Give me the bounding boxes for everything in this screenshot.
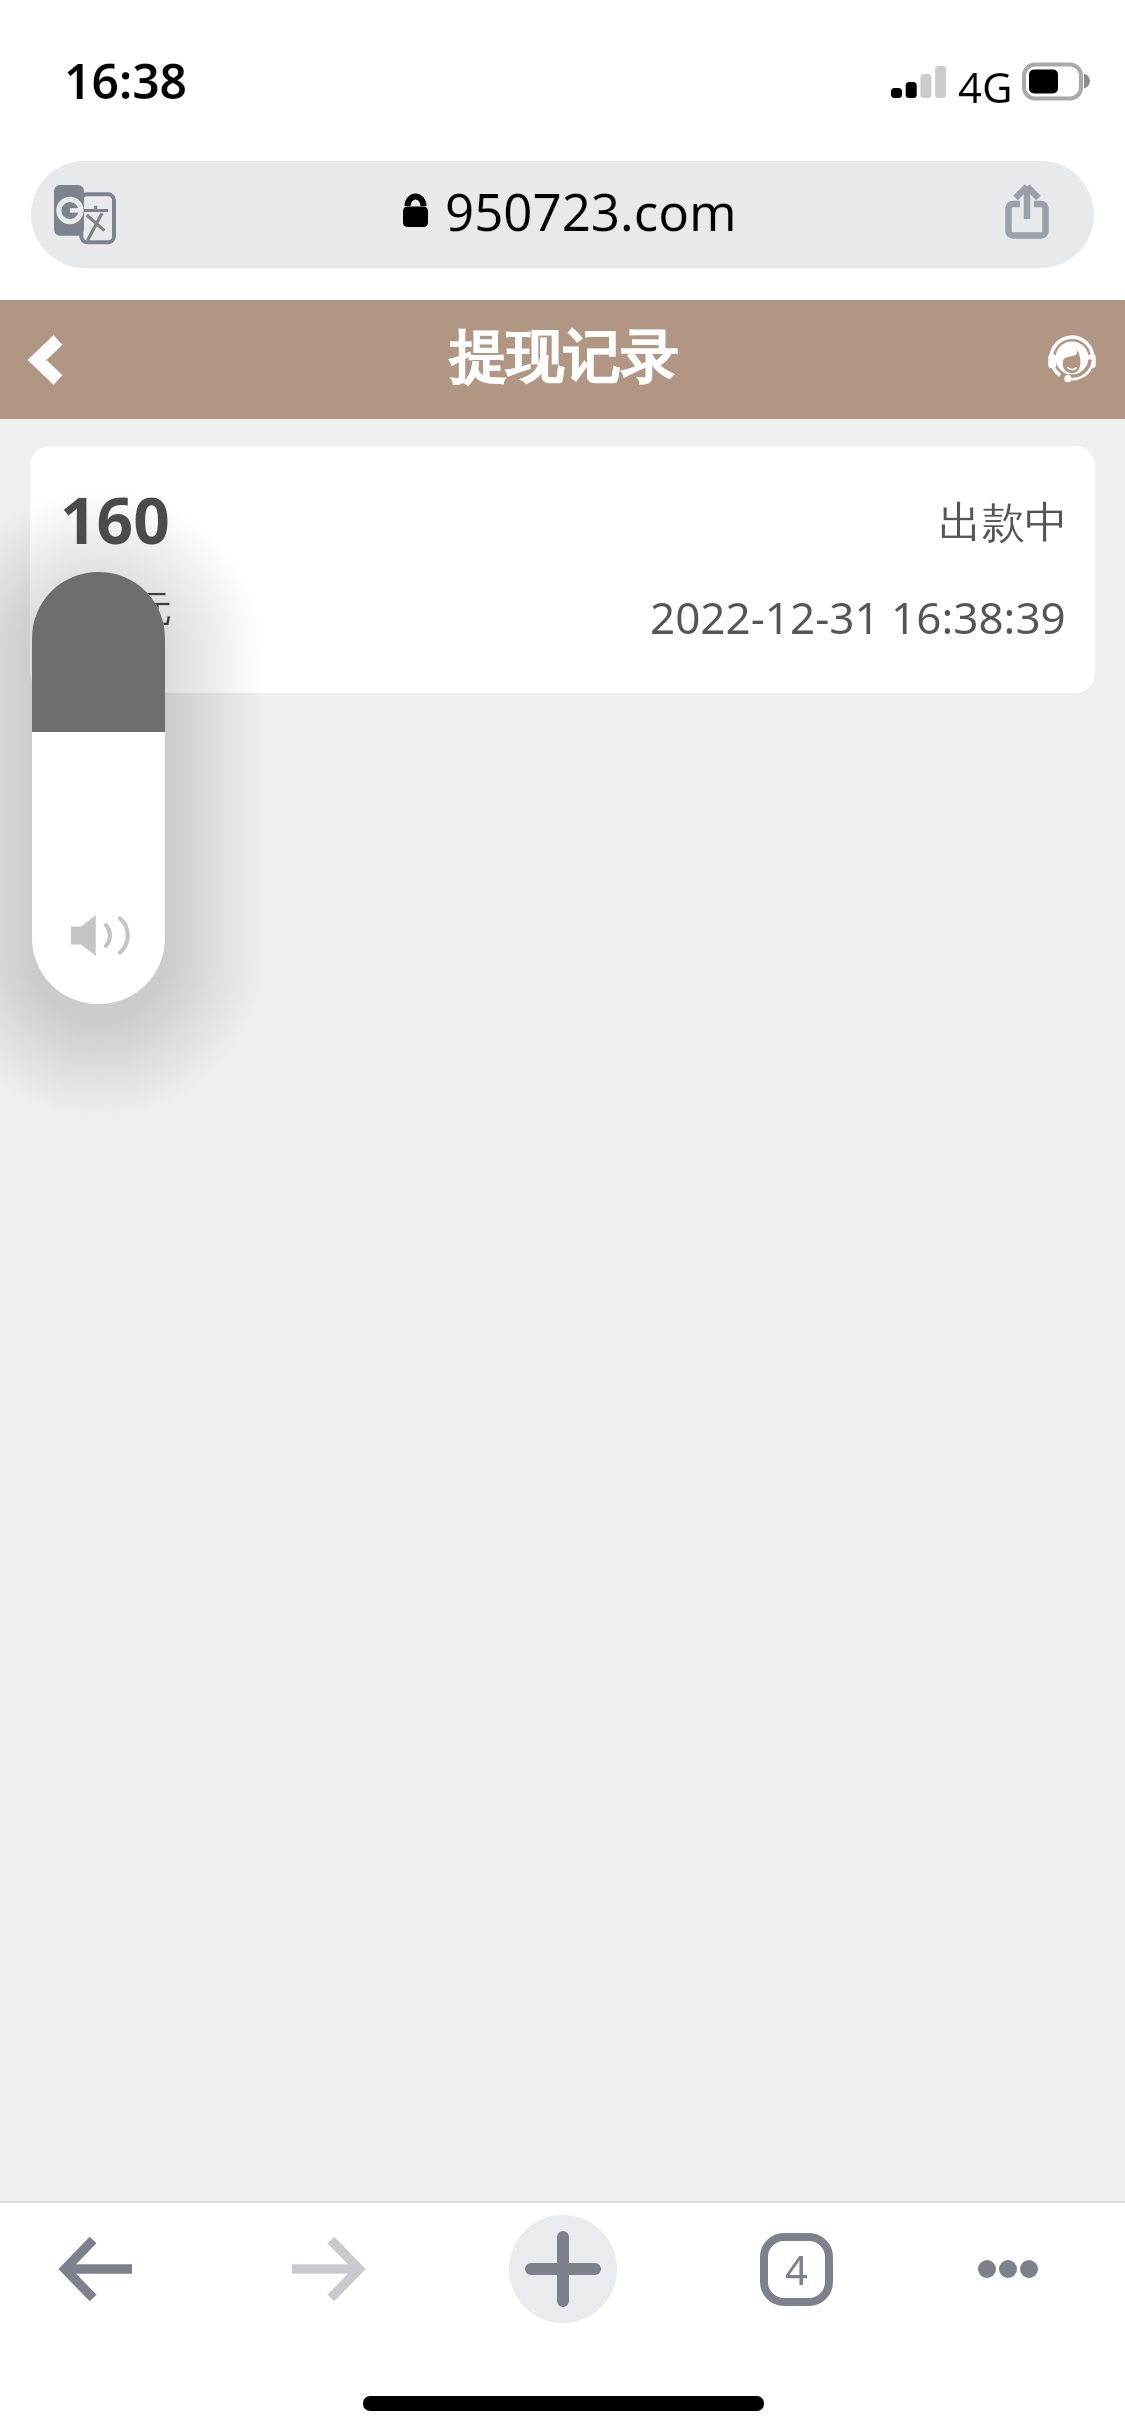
button[interactable]: 950723.com — [31, 161, 1094, 268]
button[interactable]: Go forward — [262, 2203, 394, 2335]
button[interactable]: Customer service — [1021, 300, 1125, 419]
staticText: 提现记录 — [449, 322, 677, 394]
button[interactable]: Share — [992, 175, 1062, 245]
staticText: 160 — [60, 476, 170, 563]
staticText: 4G — [958, 58, 1013, 115]
other: Volume — [32, 572, 165, 1004]
button[interactable]: Back — [0, 300, 100, 419]
staticText: 出款中 — [939, 496, 1068, 550]
button[interactable]: Go back — [30, 2203, 162, 2335]
staticText: 元 — [136, 586, 172, 631]
staticText: 4 — [785, 2242, 808, 2296]
button[interactable]: More options — [942, 2203, 1074, 2335]
staticText: 950723.com — [445, 176, 737, 245]
button[interactable]: Translate page — [49, 180, 119, 250]
staticText: 16:38 — [64, 48, 188, 113]
staticText: 2022-12-31 16:38:39 — [650, 587, 1066, 647]
button[interactable]: Show tabs — [730, 2203, 862, 2335]
button[interactable]: New tab — [497, 2203, 629, 2335]
button[interactable]: 160 — [30, 446, 1095, 693]
